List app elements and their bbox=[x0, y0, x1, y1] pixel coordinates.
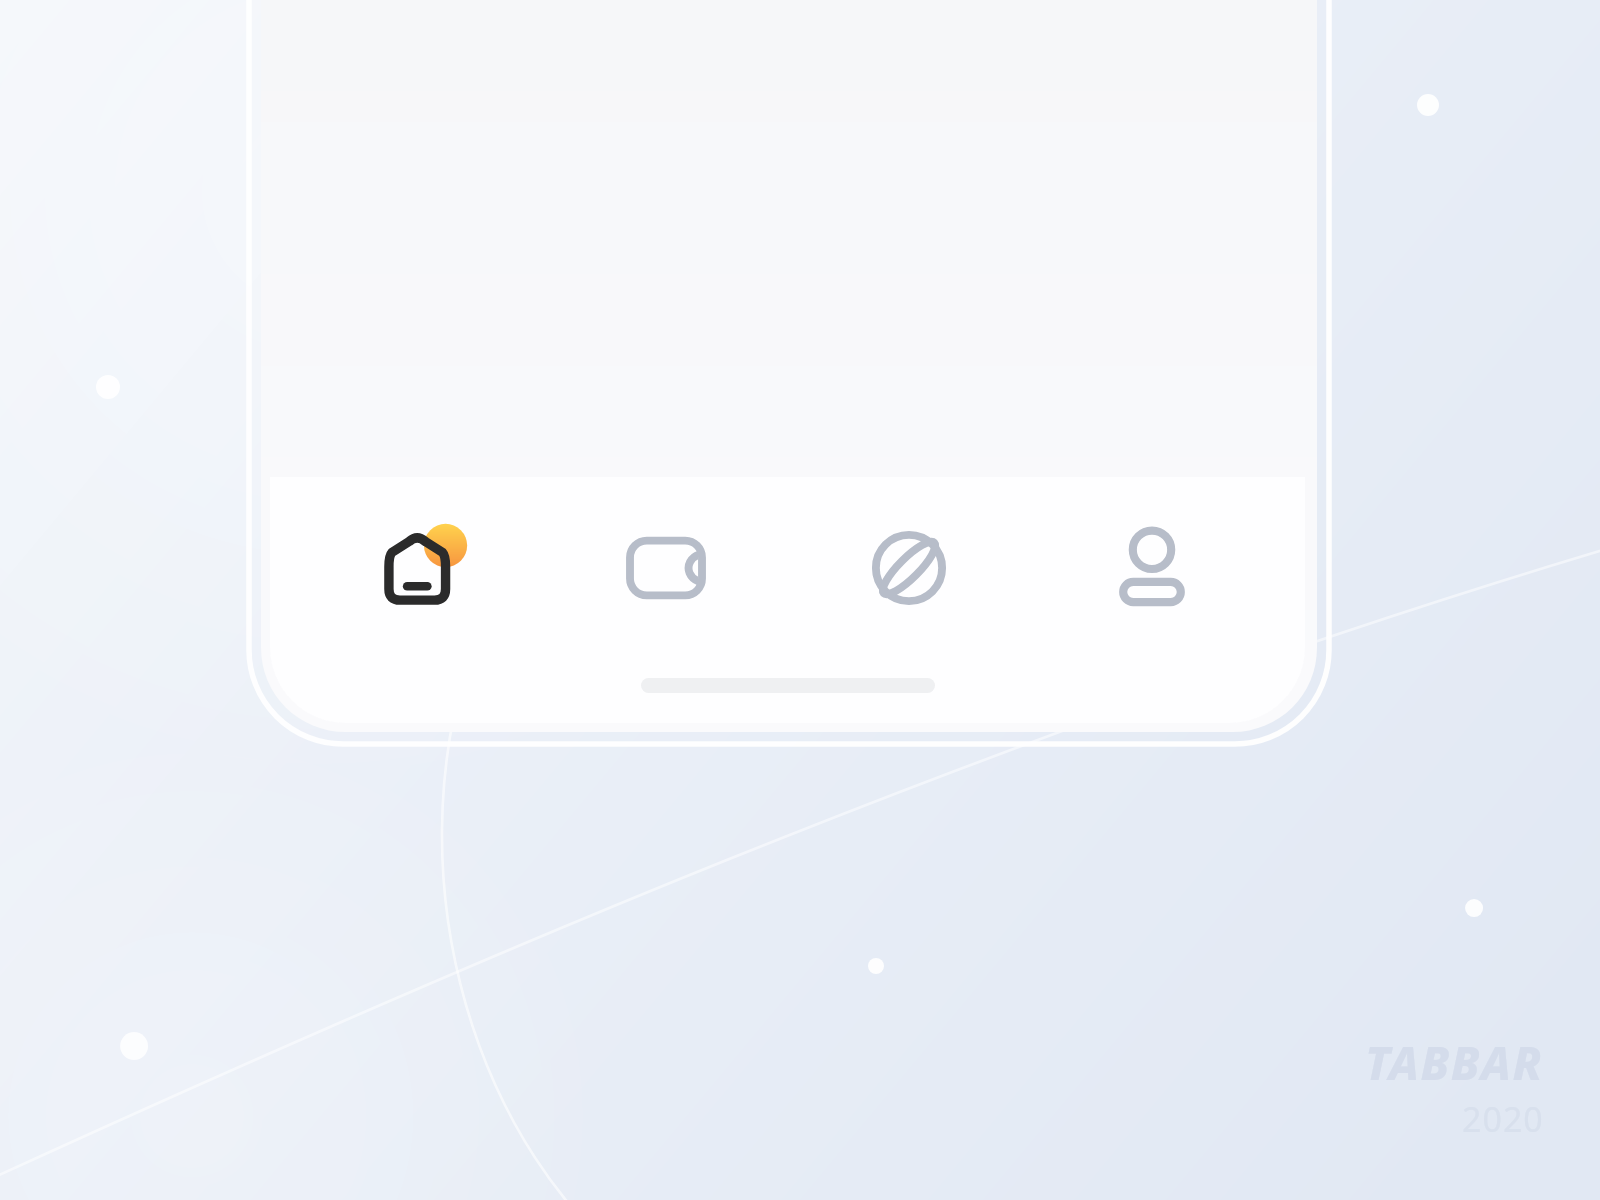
staticText: 2020 bbox=[1462, 1096, 1544, 1142]
staticText: TABBAR bbox=[1365, 1031, 1544, 1094]
button[interactable]: Profile bbox=[1062, 491, 1242, 645]
button[interactable]: Explore bbox=[819, 491, 999, 645]
button[interactable]: Home bbox=[333, 491, 513, 645]
button[interactable]: Wallet bbox=[576, 491, 756, 645]
